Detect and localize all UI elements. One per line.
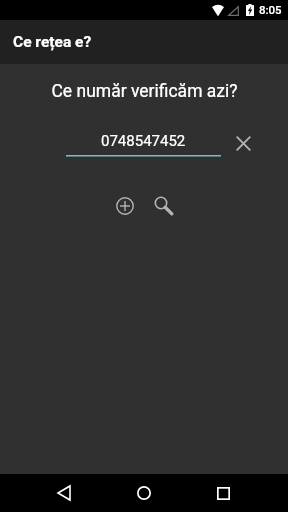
- button[interactable]: Search: [149, 191, 175, 217]
- button[interactable]: Home: [120, 474, 168, 512]
- staticText: 8:05: [259, 3, 282, 16]
- staticText: Ce număr verificăm azi?: [51, 81, 238, 102]
- button[interactable]: Ce rețea e?: [0, 20, 288, 64]
- button[interactable]: Clear number: [231, 131, 255, 155]
- button[interactable]: Recent apps: [199, 474, 247, 512]
- staticText: Ce rețea e?: [13, 33, 92, 51]
- staticText: 0748547452: [101, 132, 186, 150]
- button[interactable]: Back: [40, 474, 88, 512]
- button[interactable]: Add number: [109, 190, 140, 221]
- button[interactable]: 0748547452: [66, 132, 221, 158]
